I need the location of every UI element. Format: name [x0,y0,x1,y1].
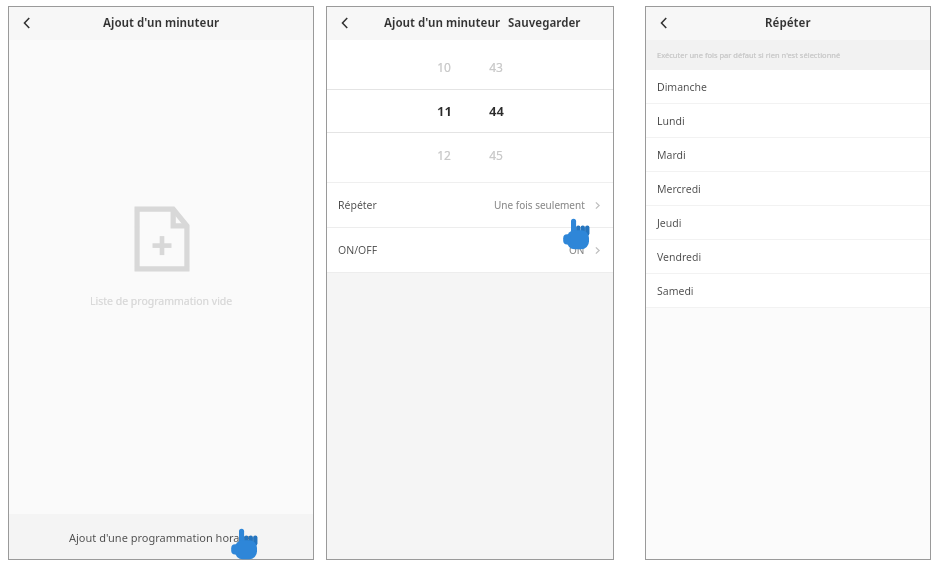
button[interactable]: Mardi [645,138,931,171]
staticText: Sauvegarder [508,15,581,31]
staticText: 45 [489,147,503,163]
button[interactable]: Mercredi [645,172,931,205]
button[interactable]: Sauvegarder [508,15,581,31]
button[interactable]: Back [651,10,677,36]
staticText: Samedi [657,284,694,298]
button[interactable]: Ajout d'une programmation horaire [8,514,314,560]
staticText: Répéter [765,15,811,31]
button[interactable]: Vendredi [645,240,931,273]
staticText: Ajout d'un minuteur [103,15,220,31]
staticText: ON [569,243,585,257]
staticText: Ajout d'une programmation horaire [69,530,253,545]
staticText: Lundi [657,114,685,128]
staticText: Vendredi [657,250,702,264]
staticText: 10 [437,59,451,75]
button[interactable]: Back [332,10,358,36]
button[interactable]: Jeudi [645,206,931,239]
staticText: Dimanche [657,80,708,94]
staticText: Jeudi [657,216,682,230]
staticText: Liste de programmation vide [90,294,233,308]
button[interactable]: Back [14,10,40,36]
button[interactable]: ON/OFF [326,228,614,272]
staticText: 44 [489,102,504,120]
staticText: Ajout d'un minuteur [384,15,501,31]
staticText: Mardi [657,148,686,162]
staticText: ON/OFF [338,243,378,257]
staticText: 12 [437,147,451,163]
staticText: Répéter [338,198,377,212]
staticText: Mercredi [657,182,701,196]
button[interactable]: Répéter [326,183,614,227]
staticText: 43 [489,59,503,75]
staticText: Exécuter une fois par défaut si rien n'e… [657,50,841,60]
button[interactable]: Lundi [645,104,931,137]
button[interactable]: Samedi [645,274,931,307]
staticText: 11 [437,102,452,120]
staticText: Une fois seulement [494,198,585,212]
button[interactable]: Dimanche [645,70,931,103]
